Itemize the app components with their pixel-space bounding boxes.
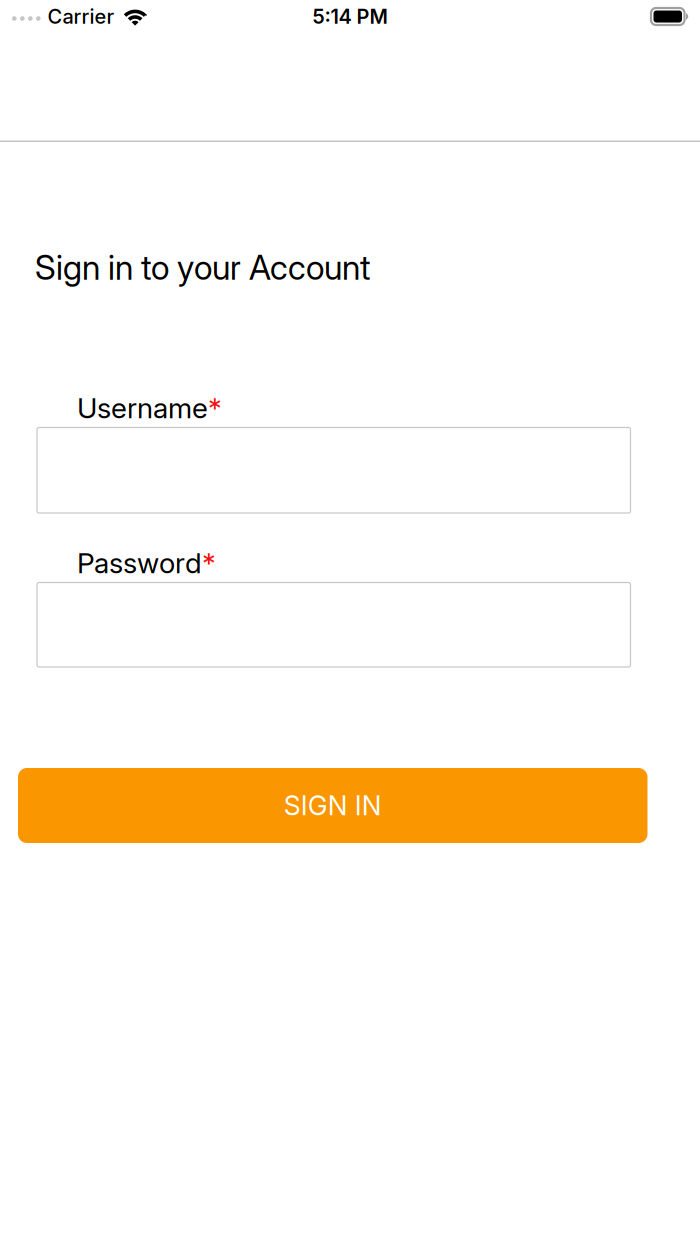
- staticText: Sign in to your Account: [35, 247, 370, 288]
- button[interactable]: Username: [37, 427, 630, 513]
- staticText: Username: [77, 391, 208, 425]
- button[interactable]: SIGN IN: [18, 768, 647, 843]
- staticText: Password: [77, 546, 202, 580]
- staticText: *: [208, 391, 222, 425]
- staticText: Carrier: [48, 4, 115, 29]
- staticText: SIGN IN: [284, 789, 382, 822]
- staticText: 5:14 PM: [312, 4, 387, 29]
- staticText: *: [202, 546, 216, 580]
- button[interactable]: Password: [37, 582, 630, 667]
